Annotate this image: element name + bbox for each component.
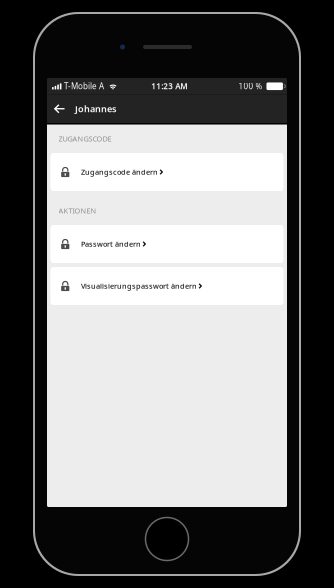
button[interactable]: Johannes bbox=[70, 94, 116, 123]
button[interactable]: Zugangscode ändern bbox=[50, 153, 283, 191]
staticText: T-Mobile A bbox=[64, 81, 104, 92]
staticText: AKTIONEN bbox=[58, 206, 96, 216]
staticText: 100 % bbox=[238, 81, 262, 92]
staticText: Visualisierungspasswort ändern bbox=[81, 281, 197, 291]
button[interactable]: Back bbox=[48, 94, 70, 123]
button[interactable]: Visualisierungspasswort ändern bbox=[50, 267, 283, 305]
staticText: Passwort ändern bbox=[81, 239, 141, 249]
button[interactable]: Passwort ändern bbox=[50, 225, 283, 263]
staticText: 11:23 AM bbox=[151, 81, 187, 92]
staticText: Johannes bbox=[75, 103, 116, 115]
staticText: ZUGANGSCODE bbox=[58, 134, 111, 144]
staticText: Zugangscode ändern bbox=[81, 167, 158, 177]
